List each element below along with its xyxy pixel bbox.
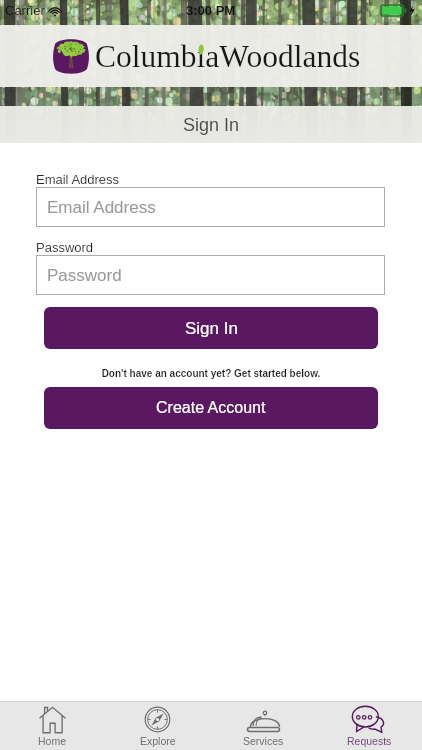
staticText: ColumbiaWoodlands [95, 39, 361, 74]
button[interactable]: Password [36, 255, 385, 295]
button[interactable]: Explore [105, 702, 210, 750]
staticText: 3:00 PM [186, 3, 236, 18]
staticText: Home [38, 735, 67, 747]
staticText: Requests [347, 735, 392, 747]
button[interactable]: Sign In [44, 307, 378, 349]
staticText: Sign In [185, 319, 238, 338]
staticText: Explore [140, 735, 176, 747]
staticText: Sign In [183, 115, 240, 135]
button[interactable]: Create Account [44, 387, 378, 429]
button[interactable]: Requests [316, 702, 422, 750]
staticText: Email Address [36, 172, 120, 187]
button[interactable]: Email Address [36, 187, 385, 227]
staticText: Carrier [5, 3, 45, 18]
staticText: Services [243, 735, 284, 747]
staticText: Password [36, 240, 94, 255]
staticText: Don't have an account yet? Get started b… [0, 368, 422, 379]
staticText: Email Address [47, 198, 156, 217]
button[interactable]: Home [0, 702, 105, 750]
button[interactable]: Services [210, 702, 316, 750]
staticText: Create Account [156, 399, 266, 417]
staticText: Password [47, 266, 122, 285]
